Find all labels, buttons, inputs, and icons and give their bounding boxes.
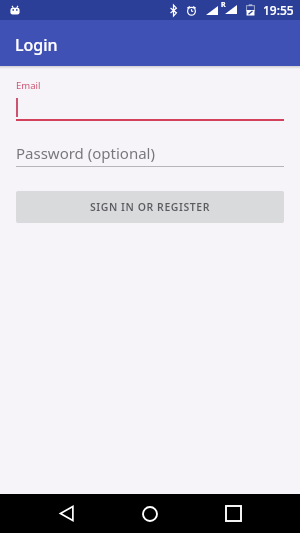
button[interactable]: SIGN IN OR REGISTER xyxy=(16,191,284,223)
button[interactable]: Password (optional) xyxy=(16,143,284,167)
staticText: Login xyxy=(15,34,58,56)
staticText: SIGN IN OR REGISTER xyxy=(90,200,210,214)
staticText: Email xyxy=(16,79,41,92)
staticText: Password (optional) xyxy=(16,143,155,163)
staticText: R xyxy=(221,0,226,10)
button[interactable]: Home xyxy=(133,494,167,533)
button[interactable]: Email xyxy=(16,79,284,121)
button[interactable]: Recent apps xyxy=(216,494,250,533)
staticText: 19:55 xyxy=(263,2,294,18)
button[interactable]: Back xyxy=(50,494,84,533)
